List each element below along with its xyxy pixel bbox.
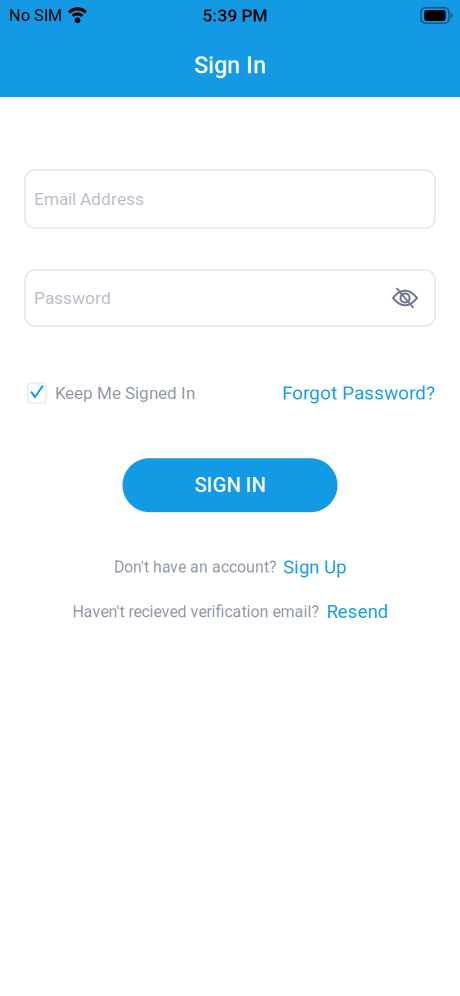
staticText: Forgot Password? xyxy=(282,382,435,404)
staticText: No SIM xyxy=(9,6,62,25)
staticText: Don't have an account? xyxy=(114,558,276,576)
staticText: Sign In xyxy=(194,52,266,79)
staticText: SIGN IN xyxy=(194,473,265,497)
staticText: Keep Me Signed In xyxy=(55,383,195,403)
staticText: 5:39 PM xyxy=(202,5,267,26)
button[interactable]: Keep Me Signed In xyxy=(28,383,195,403)
button[interactable]: Email Address xyxy=(25,170,435,228)
button[interactable]: Password xyxy=(25,270,435,326)
staticText: Resend xyxy=(326,601,387,623)
button[interactable]: Don't have an account? xyxy=(114,556,346,578)
staticText: Password xyxy=(34,288,111,308)
staticText: Sign Up xyxy=(283,556,346,578)
button[interactable]: Haven't recieved verification email? xyxy=(72,601,387,623)
button[interactable]: SIGN IN xyxy=(122,458,337,512)
staticText: Haven't recieved verification email? xyxy=(72,602,319,621)
staticText: Email Address xyxy=(34,189,144,209)
button[interactable]: Forgot Password? xyxy=(282,382,435,404)
